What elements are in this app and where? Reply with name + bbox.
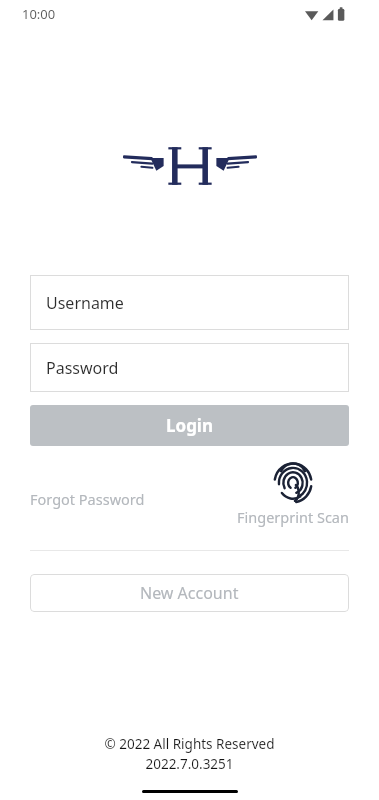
staticText: New Account (140, 582, 239, 604)
staticText: Fingerprint Scan (237, 507, 349, 527)
staticText: Username (46, 292, 124, 314)
button[interactable]: Login (30, 405, 349, 446)
staticText: Login (166, 414, 214, 437)
staticText: Password (46, 357, 119, 379)
staticText: Forgot Password (30, 489, 145, 509)
button[interactable]: Fingerprint Scan (237, 460, 349, 527)
button[interactable]: Forgot Password (30, 460, 237, 538)
other: Fingerprint Scan (271, 460, 315, 504)
button[interactable]: New Account (30, 574, 349, 612)
button[interactable]: Password (30, 343, 349, 392)
staticText: © 2022 All Rights Reserved (104, 735, 275, 753)
button[interactable]: Username (30, 275, 349, 330)
staticText: 10:00 (22, 5, 56, 23)
staticText: 2022.7.0.3251 (145, 755, 234, 773)
